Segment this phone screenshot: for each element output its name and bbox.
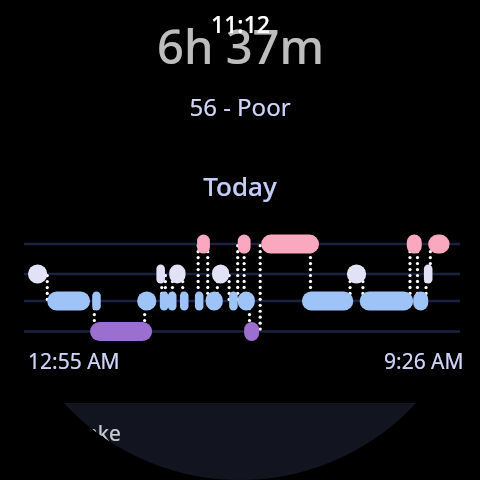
- button[interactable]: Sleep stages chart: [0, 228, 480, 343]
- staticText: Awake: [56, 419, 121, 448]
- staticText: 56 - Poor: [189, 90, 291, 123]
- staticText: 11:12: [211, 8, 270, 39]
- staticText: 12:55 AM: [28, 347, 120, 376]
- staticText: 9:26 AM: [384, 347, 464, 376]
- staticText: Today: [203, 168, 277, 203]
- button[interactable]: Awake: [6, 403, 474, 480]
- staticText: 6h 37m: [157, 14, 324, 78]
